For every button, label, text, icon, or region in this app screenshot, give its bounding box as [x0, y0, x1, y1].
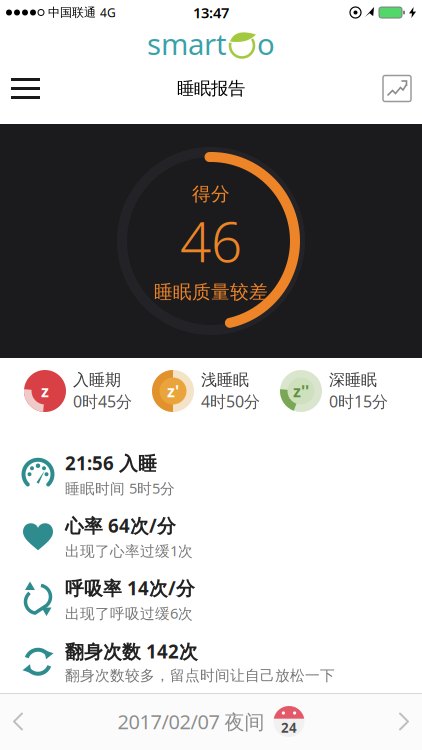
- staticText: 13:47: [193, 3, 229, 22]
- staticText: 得分: [192, 182, 230, 205]
- staticText: 翻身次数 142次: [65, 639, 198, 664]
- staticText: o: [257, 24, 275, 63]
- staticText: 睡眠报告: [177, 78, 245, 99]
- staticText: 中国联通: [48, 5, 96, 20]
- staticText: 4G: [100, 4, 116, 20]
- staticText: smart: [147, 24, 227, 63]
- staticText: 21:56 入睡: [65, 451, 157, 475]
- button[interactable]: Sleep trends: [383, 75, 411, 101]
- staticText: 睡眠时间 5时5分: [65, 478, 175, 498]
- staticText: 出现了心率过缓1次: [65, 541, 193, 560]
- staticText: 入睡期: [73, 370, 121, 390]
- staticText: 2017/02/07 夜间: [117, 708, 264, 735]
- staticText: 睡眠质量较差: [154, 280, 268, 303]
- staticText: 24: [281, 719, 297, 736]
- staticText: 翻身次数较多，留点时间让自己放松一下: [65, 667, 335, 685]
- staticText: 深睡眠: [329, 370, 377, 390]
- staticText: 浅睡眠: [201, 370, 249, 390]
- staticText: z': [167, 380, 179, 402]
- staticText: 出现了呼吸过缓6次: [65, 603, 193, 623]
- staticText: 46: [180, 205, 242, 277]
- staticText: 呼吸率 14次/分: [65, 576, 195, 600]
- button[interactable]: Next day: [400, 695, 422, 747]
- staticText: z: [41, 380, 49, 402]
- staticText: 心率 64次/分: [65, 513, 176, 538]
- button[interactable]: Choose date: [117, 706, 304, 737]
- staticText: 0时45分: [73, 391, 132, 412]
- button[interactable]: Menu: [11, 74, 40, 103]
- staticText: 4时50分: [201, 391, 260, 412]
- button[interactable]: Previous day: [0, 695, 22, 747]
- staticText: 0时15分: [329, 391, 388, 412]
- staticText: z'': [293, 380, 309, 402]
